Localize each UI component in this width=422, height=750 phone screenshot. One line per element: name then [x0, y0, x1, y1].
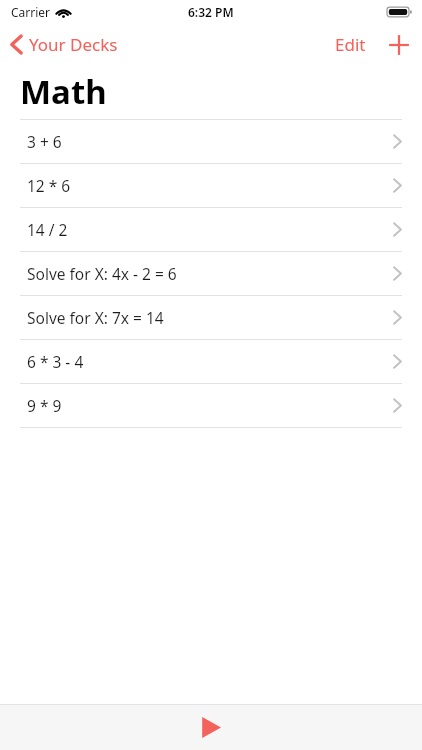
staticText: 14 / 2 — [27, 219, 393, 240]
staticText: 6 * 3 - 4 — [27, 351, 393, 372]
button[interactable]: Solve for X: 4x - 2 = 6 — [0, 252, 422, 295]
button[interactable]: Play deck — [183, 709, 239, 746]
button[interactable]: 9 * 9 — [0, 384, 422, 427]
button[interactable]: 14 / 2 — [0, 208, 422, 251]
staticText: 12 * 6 — [27, 175, 393, 196]
staticText: 6:32 PM — [188, 4, 234, 20]
button[interactable]: Edit — [325, 27, 376, 62]
staticText: Solve for X: 7x = 14 — [27, 307, 393, 328]
staticText: Solve for X: 4x - 2 = 6 — [27, 263, 393, 284]
button[interactable]: Add card — [376, 28, 422, 62]
staticText: Edit — [335, 33, 366, 56]
staticText: Math — [20, 69, 107, 114]
staticText: 9 * 9 — [27, 395, 393, 416]
button[interactable]: 3 + 6 — [0, 120, 422, 163]
staticText: 3 + 6 — [27, 131, 393, 152]
button[interactable]: 6 * 3 - 4 — [0, 340, 422, 383]
staticText: Carrier — [11, 4, 51, 20]
staticText: Your Decks — [29, 33, 118, 56]
button[interactable]: Your Decks — [0, 29, 126, 60]
button[interactable]: Solve for X: 7x = 14 — [0, 296, 422, 339]
button[interactable]: 12 * 6 — [0, 164, 422, 207]
